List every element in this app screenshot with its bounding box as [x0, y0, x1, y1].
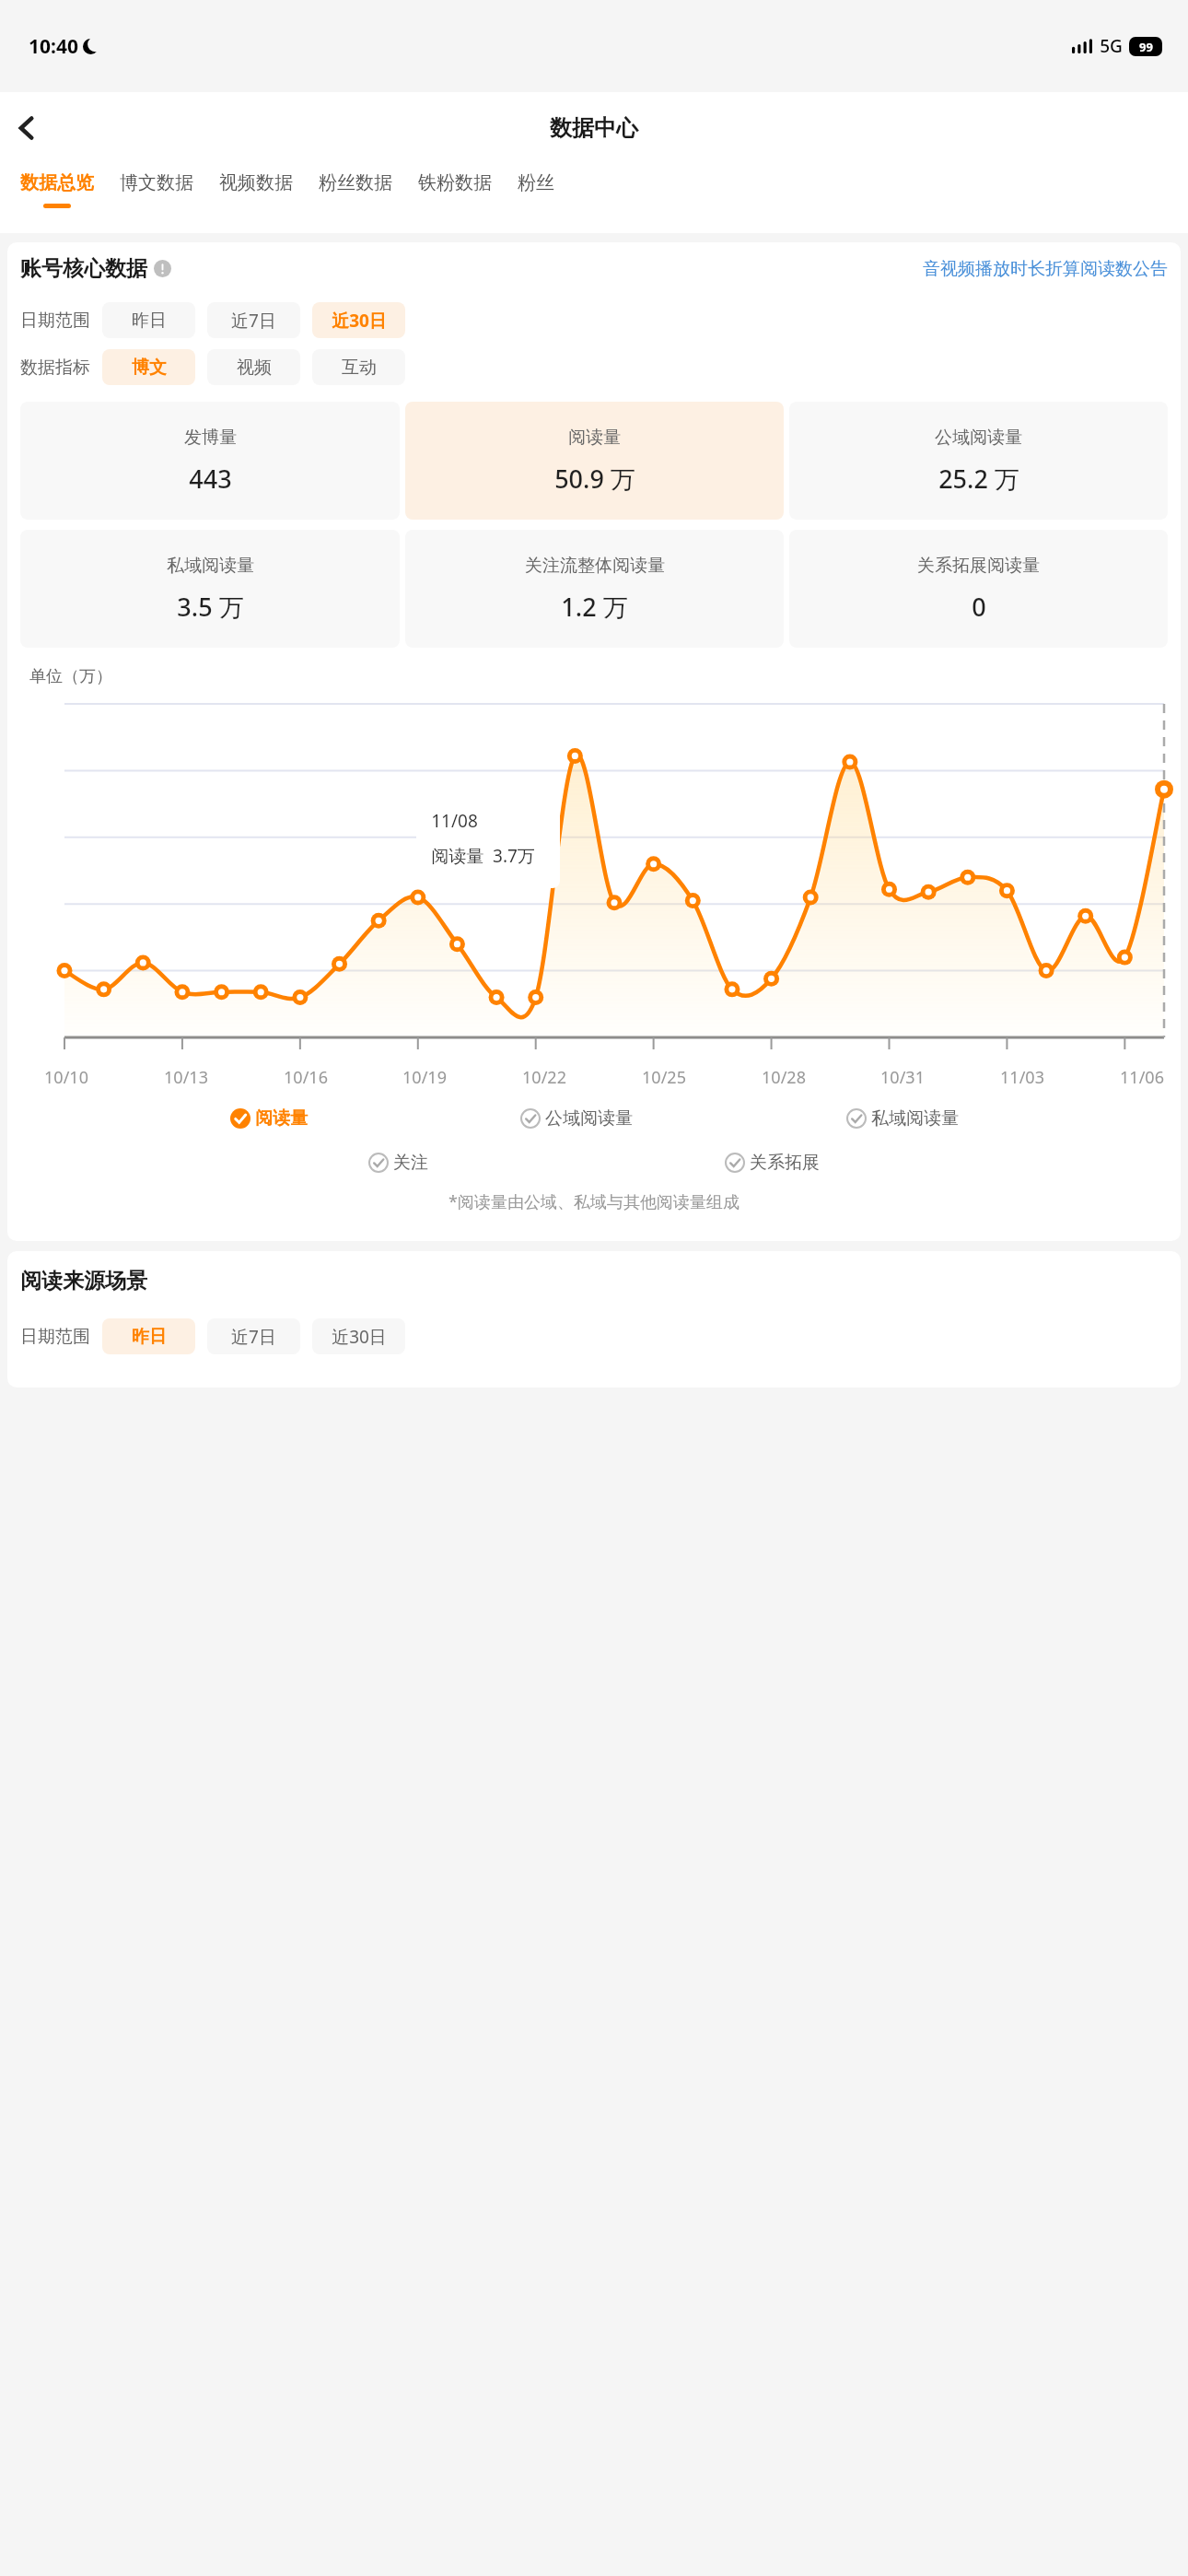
staticText: 50.9 万 — [554, 462, 635, 496]
staticText: 粉丝数据 — [319, 171, 392, 194]
button[interactable]: 博文数据 — [120, 164, 193, 204]
staticText: 1.2 万 — [561, 590, 628, 624]
staticText: 11/06 — [1120, 1066, 1164, 1089]
button[interactable]: 私域阅读量 — [843, 1104, 962, 1133]
staticText: 10/31 — [880, 1066, 925, 1089]
staticText: 私域阅读量 — [871, 1107, 959, 1130]
staticText: 数据指标 — [20, 357, 90, 379]
staticText: 近7日 — [231, 1325, 276, 1349]
staticText: 10/10 — [44, 1066, 88, 1089]
staticText: *阅读量由公域、私域与其他阅读量组成 — [448, 1190, 740, 1213]
staticText: 音视频播放时长折算阅读数公告 — [923, 258, 1168, 280]
staticText: 近30日 — [332, 1325, 387, 1349]
staticText: 发博量 — [184, 427, 237, 449]
staticText: 关系拓展阅读量 — [917, 555, 1040, 577]
staticText: 关注 — [393, 1152, 428, 1174]
staticText: 99 — [1139, 39, 1153, 55]
staticText: 单位（万） — [29, 666, 112, 687]
button[interactable]: Info — [154, 260, 171, 277]
staticText: 粉丝 — [518, 171, 554, 194]
staticText: 近7日 — [231, 309, 276, 333]
button[interactable]: Back — [0, 100, 55, 156]
staticText: 视频 — [237, 357, 272, 379]
button[interactable]: 阅读量 — [405, 402, 784, 520]
staticText: 11/03 — [1000, 1066, 1044, 1089]
staticText: 铁粉数据 — [418, 171, 492, 194]
staticText: 阅读量 3.7万 — [431, 844, 535, 868]
staticText: 关系拓展 — [750, 1152, 820, 1174]
button[interactable]: 音视频播放时长折算阅读数公告 — [923, 258, 1168, 280]
staticText: 10/19 — [402, 1066, 447, 1089]
button[interactable]: 视频数据 — [219, 164, 293, 204]
button[interactable]: 关注 — [365, 1148, 432, 1177]
button[interactable]: 粉丝数据 — [319, 164, 392, 204]
button[interactable]: 粉丝 — [518, 164, 554, 204]
staticText: 昨日 — [132, 310, 167, 332]
staticText: 10/25 — [642, 1066, 686, 1089]
staticText: 日期范围 — [20, 310, 90, 332]
button[interactable]: 昨日 — [102, 1318, 195, 1354]
staticText: 10/13 — [164, 1066, 208, 1089]
staticText: 阅读量 — [568, 427, 621, 449]
button[interactable]: 阅读量 — [227, 1104, 311, 1133]
staticText: 公域阅读量 — [545, 1107, 633, 1130]
button[interactable]: 公域阅读量 — [789, 402, 1168, 520]
button[interactable]: 近7日 — [207, 302, 300, 338]
button[interactable]: 昨日 — [102, 302, 195, 338]
button[interactable]: 私域阅读量 — [20, 530, 400, 648]
staticText: 私域阅读量 — [167, 555, 254, 577]
staticText: 阅读来源场景 — [20, 1268, 147, 1294]
button[interactable]: 互动 — [312, 349, 405, 385]
staticText: 数据中心 — [550, 114, 638, 142]
staticText: 近30日 — [332, 309, 387, 333]
button[interactable]: 关系拓展阅读量 — [789, 530, 1168, 648]
staticText: 10/22 — [522, 1066, 566, 1089]
button[interactable]: 关注流整体阅读量 — [405, 530, 784, 648]
staticText: 博文 — [132, 357, 167, 379]
staticText: 10/16 — [284, 1066, 328, 1089]
button[interactable]: 近30日 — [312, 302, 405, 338]
button[interactable]: 公域阅读量 — [517, 1104, 636, 1133]
staticText: 10/28 — [762, 1066, 806, 1089]
staticText: 阅读量 — [255, 1107, 308, 1130]
staticText: 关注流整体阅读量 — [525, 555, 665, 577]
staticText: 5G — [1100, 34, 1123, 58]
staticText: 日期范围 — [20, 1326, 90, 1348]
staticText: 昨日 — [132, 1326, 167, 1348]
button[interactable]: 近7日 — [207, 1318, 300, 1354]
staticText: 11/08 — [431, 809, 478, 833]
staticText: 25.2 万 — [938, 462, 1019, 496]
staticText: 账号核心数据 — [20, 255, 147, 282]
button[interactable]: 发博量 — [20, 402, 400, 520]
button[interactable]: 博文 — [102, 349, 195, 385]
staticText: 3.5 万 — [177, 590, 244, 624]
staticText: 10:40 — [29, 33, 78, 60]
button[interactable]: 视频 — [207, 349, 300, 385]
button[interactable]: 近30日 — [312, 1318, 405, 1354]
staticText: 视频数据 — [219, 171, 293, 194]
staticText: 数据总览 — [20, 171, 94, 194]
staticText: 公域阅读量 — [935, 427, 1022, 449]
button[interactable]: 铁粉数据 — [418, 164, 492, 204]
button[interactable]: 数据总览 — [20, 164, 94, 208]
button[interactable]: 关系拓展 — [721, 1148, 823, 1177]
staticText: 互动 — [342, 357, 377, 379]
staticText: 0 — [972, 590, 986, 624]
staticText: 博文数据 — [120, 171, 193, 194]
staticText: 443 — [189, 462, 232, 496]
